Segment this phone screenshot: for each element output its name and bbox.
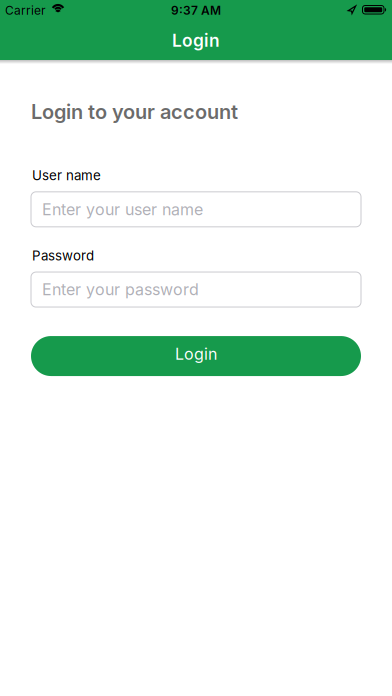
staticText: Enter your user name: [42, 200, 203, 219]
staticText: Login: [172, 30, 220, 51]
button[interactable]: Login: [31, 336, 361, 376]
staticText: Carrier: [5, 3, 46, 18]
staticText: Enter your password: [42, 280, 199, 299]
staticText: Login: [175, 345, 217, 363]
staticText: Password: [32, 248, 94, 263]
staticText: User name: [32, 168, 101, 183]
staticText: 9:37 AM: [171, 3, 221, 18]
staticText: Login to your account: [31, 100, 238, 124]
textField[interactable]: Enter your user name: [31, 192, 361, 227]
textField[interactable]: Enter your password: [31, 272, 361, 307]
